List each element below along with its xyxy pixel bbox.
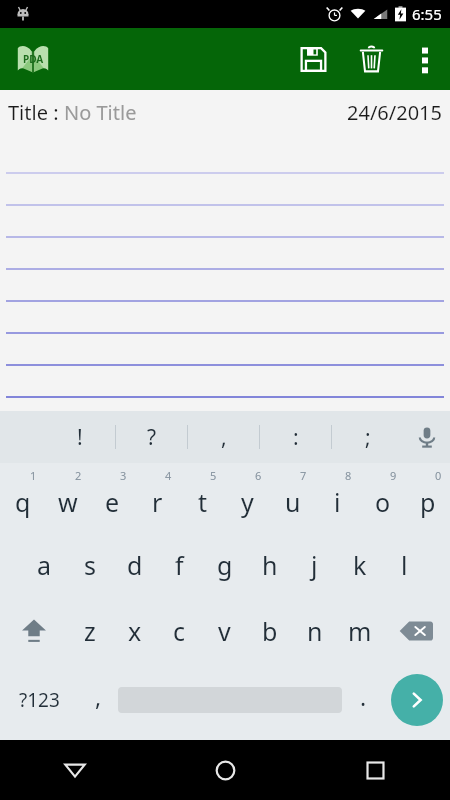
button[interactable]: 9: [360, 463, 405, 532]
staticText: 3: [120, 468, 127, 483]
button[interactable]: App logo: [14, 40, 52, 78]
button[interactable]: ;: [332, 411, 403, 463]
button[interactable]: b: [247, 598, 292, 664]
button[interactable]: m: [337, 598, 382, 664]
button[interactable]: Backspace: [382, 598, 450, 664]
staticText: i: [334, 485, 341, 519]
button[interactable]: !: [44, 411, 115, 463]
staticText: PDA: [23, 52, 44, 66]
staticText: t: [198, 485, 208, 519]
staticText: 4: [165, 468, 172, 483]
button[interactable]: 1: [0, 463, 45, 532]
staticText: f: [175, 548, 184, 582]
button[interactable]: Space: [118, 664, 342, 736]
staticText: p: [420, 485, 436, 519]
staticText: v: [218, 614, 231, 648]
button[interactable]: Back: [43, 740, 107, 800]
button[interactable]: Enter: [384, 664, 450, 736]
button[interactable]: Save: [284, 30, 342, 88]
staticText: 9: [390, 468, 397, 483]
button[interactable]: f: [157, 532, 202, 598]
staticText: 7: [300, 468, 307, 483]
button[interactable]: d: [112, 532, 157, 598]
staticText: o: [375, 485, 391, 519]
button[interactable]: Title :: [8, 99, 347, 126]
staticText: No Title: [64, 99, 137, 126]
button[interactable]: 4: [135, 463, 180, 532]
button[interactable]: n: [292, 598, 337, 664]
button[interactable]: 6: [225, 463, 270, 532]
staticText: c: [173, 614, 186, 648]
button[interactable]: l: [382, 532, 427, 598]
staticText: 5: [210, 468, 217, 483]
button[interactable]: c: [157, 598, 202, 664]
button[interactable]: More options: [400, 34, 450, 84]
button[interactable]: Home: [193, 740, 257, 800]
staticText: m: [348, 614, 372, 648]
button[interactable]: ,: [78, 664, 118, 736]
staticText: !: [77, 423, 83, 452]
staticText: z: [84, 614, 96, 648]
button[interactable]: ?123: [0, 664, 78, 736]
staticText: 0: [435, 468, 442, 483]
staticText: y: [241, 485, 254, 519]
staticText: ?123: [19, 687, 60, 713]
staticText: h: [262, 548, 278, 582]
button[interactable]: g: [202, 532, 247, 598]
staticText: 8: [345, 468, 352, 483]
staticText: 1: [30, 468, 37, 483]
staticText: u: [285, 485, 301, 519]
button[interactable]: a: [22, 532, 67, 598]
staticText: 24/6/2015: [347, 99, 442, 126]
staticText: Title :: [8, 99, 64, 126]
staticText: g: [217, 548, 233, 582]
staticText: r: [152, 485, 163, 519]
staticText: ,: [221, 423, 227, 452]
button[interactable]: :: [260, 411, 331, 463]
staticText: k: [353, 548, 367, 582]
button[interactable]: ,: [188, 411, 259, 463]
staticText: 2: [75, 468, 82, 483]
button[interactable]: 8: [315, 463, 360, 532]
staticText: 6: [255, 468, 262, 483]
staticText: a: [37, 548, 52, 582]
staticText: s: [84, 548, 96, 582]
button[interactable]: j: [292, 532, 337, 598]
button[interactable]: v: [202, 598, 247, 664]
button[interactable]: Recent apps: [343, 740, 407, 800]
staticText: w: [58, 485, 78, 519]
staticText: d: [127, 548, 143, 582]
staticText: j: [311, 548, 318, 582]
button[interactable]: Shift: [0, 598, 67, 664]
staticText: ?: [147, 423, 157, 452]
button[interactable]: k: [337, 532, 382, 598]
staticText: ,: [95, 681, 102, 712]
button[interactable]: 7: [270, 463, 315, 532]
staticText: e: [105, 485, 120, 519]
staticText: :: [293, 423, 299, 452]
staticText: q: [15, 485, 31, 519]
staticText: b: [262, 614, 278, 648]
button[interactable]: s: [67, 532, 112, 598]
staticText: .: [360, 681, 367, 712]
button[interactable]: Voice input: [403, 411, 450, 463]
button[interactable]: Delete: [342, 30, 400, 88]
button[interactable]: x: [112, 598, 157, 664]
staticText: n: [307, 614, 323, 648]
staticText: 6:55: [412, 4, 442, 24]
staticText: ;: [365, 423, 371, 452]
button[interactable]: 5: [180, 463, 225, 532]
button[interactable]: 0: [405, 463, 450, 532]
button[interactable]: z: [67, 598, 112, 664]
button[interactable]: h: [247, 532, 292, 598]
button[interactable]: .: [342, 664, 384, 736]
staticText: l: [401, 548, 408, 582]
button[interactable]: 3: [90, 463, 135, 532]
button[interactable]: ?: [116, 411, 187, 463]
staticText: x: [128, 614, 142, 648]
button[interactable]: 2: [45, 463, 90, 532]
